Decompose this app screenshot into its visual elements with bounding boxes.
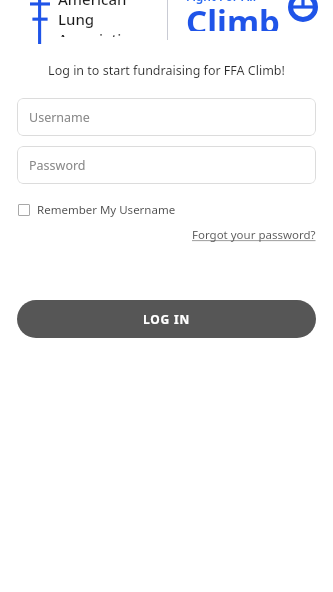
- staticText: Log in to start fundraising for FFA Clim…: [0, 62, 333, 79]
- button[interactable]: LOG IN: [17, 300, 316, 338]
- button[interactable]: Password: [17, 146, 316, 184]
- button[interactable]: Username: [17, 98, 316, 136]
- staticText: Lung: [58, 9, 95, 29]
- button[interactable]: Forgot your password?: [191, 225, 317, 245]
- staticText: LOG IN: [143, 311, 190, 327]
- staticText: Fight For Air: [186, 0, 258, 4]
- staticText: Remember My Username: [37, 202, 176, 218]
- staticText: Climb: [186, 0, 280, 31]
- staticText: Forgot your password?: [192, 227, 316, 243]
- button[interactable]: Remember My Username: [17, 200, 177, 220]
- staticText: American: [58, 0, 127, 9]
- staticText: Password: [29, 157, 86, 174]
- staticText: Username: [29, 109, 90, 126]
- staticText: Association.: [58, 29, 145, 37]
